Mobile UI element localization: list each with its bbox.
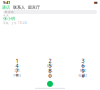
staticText: 今天 bbox=[3, 14, 9, 17]
staticText: 2 bbox=[48, 57, 51, 64]
staticText: 联系人 bbox=[13, 5, 25, 10]
staticText: 通话 bbox=[2, 5, 10, 10]
staticText: WXYZ bbox=[78, 74, 87, 78]
button[interactable]: 1 bbox=[0, 60, 33, 65]
staticText: GHI bbox=[14, 69, 19, 73]
staticText bbox=[16, 64, 17, 68]
button[interactable]: 7 bbox=[0, 70, 33, 75]
staticText: MNO bbox=[80, 69, 86, 73]
staticText: 0 bbox=[48, 72, 51, 79]
staticText: 手机 上午 10:24 bbox=[3, 21, 27, 25]
staticText: 9:41 bbox=[3, 0, 10, 5]
staticText: 张小明 bbox=[3, 16, 15, 21]
staticText: 9 bbox=[81, 67, 84, 74]
staticText: 3 bbox=[81, 57, 84, 64]
staticText: 1 bbox=[15, 57, 18, 64]
button[interactable]: Call bbox=[47, 81, 53, 87]
staticText: 6 bbox=[81, 62, 84, 69]
button[interactable]: 留言厅 bbox=[28, 5, 40, 10]
button[interactable]: 通话 bbox=[2, 5, 10, 10]
button[interactable]: 8 bbox=[33, 70, 66, 75]
button[interactable]: 2 bbox=[33, 60, 66, 65]
staticText: TUV bbox=[47, 74, 52, 78]
staticText: PQRS bbox=[13, 74, 20, 78]
button[interactable]: 3 bbox=[66, 60, 99, 65]
staticText: 搜索 bbox=[8, 10, 14, 14]
staticText: ABC bbox=[47, 64, 53, 68]
staticText: + bbox=[49, 79, 51, 83]
staticText: ▮▮▮ bbox=[94, 1, 97, 4]
staticText: DEF bbox=[81, 64, 85, 68]
button[interactable]: 6 bbox=[66, 65, 99, 70]
button[interactable]: 5 bbox=[33, 65, 66, 70]
staticText: # bbox=[81, 72, 84, 79]
button[interactable]: 0 bbox=[33, 75, 66, 80]
staticText: 4 bbox=[15, 62, 18, 69]
button[interactable]: # bbox=[66, 75, 99, 80]
staticText: JKL bbox=[48, 69, 52, 73]
button[interactable]: 联系人 bbox=[13, 5, 25, 10]
staticText: * bbox=[15, 72, 18, 79]
staticText: 5 bbox=[48, 62, 51, 69]
button[interactable]: 4 bbox=[0, 65, 33, 70]
staticText: 留言厅 bbox=[28, 5, 40, 10]
staticText: 7 bbox=[15, 67, 18, 74]
button[interactable]: 张小明 bbox=[0, 17, 100, 24]
staticText: 8 bbox=[48, 67, 51, 74]
button[interactable]: * bbox=[0, 75, 33, 80]
button[interactable]: 9 bbox=[66, 70, 99, 75]
